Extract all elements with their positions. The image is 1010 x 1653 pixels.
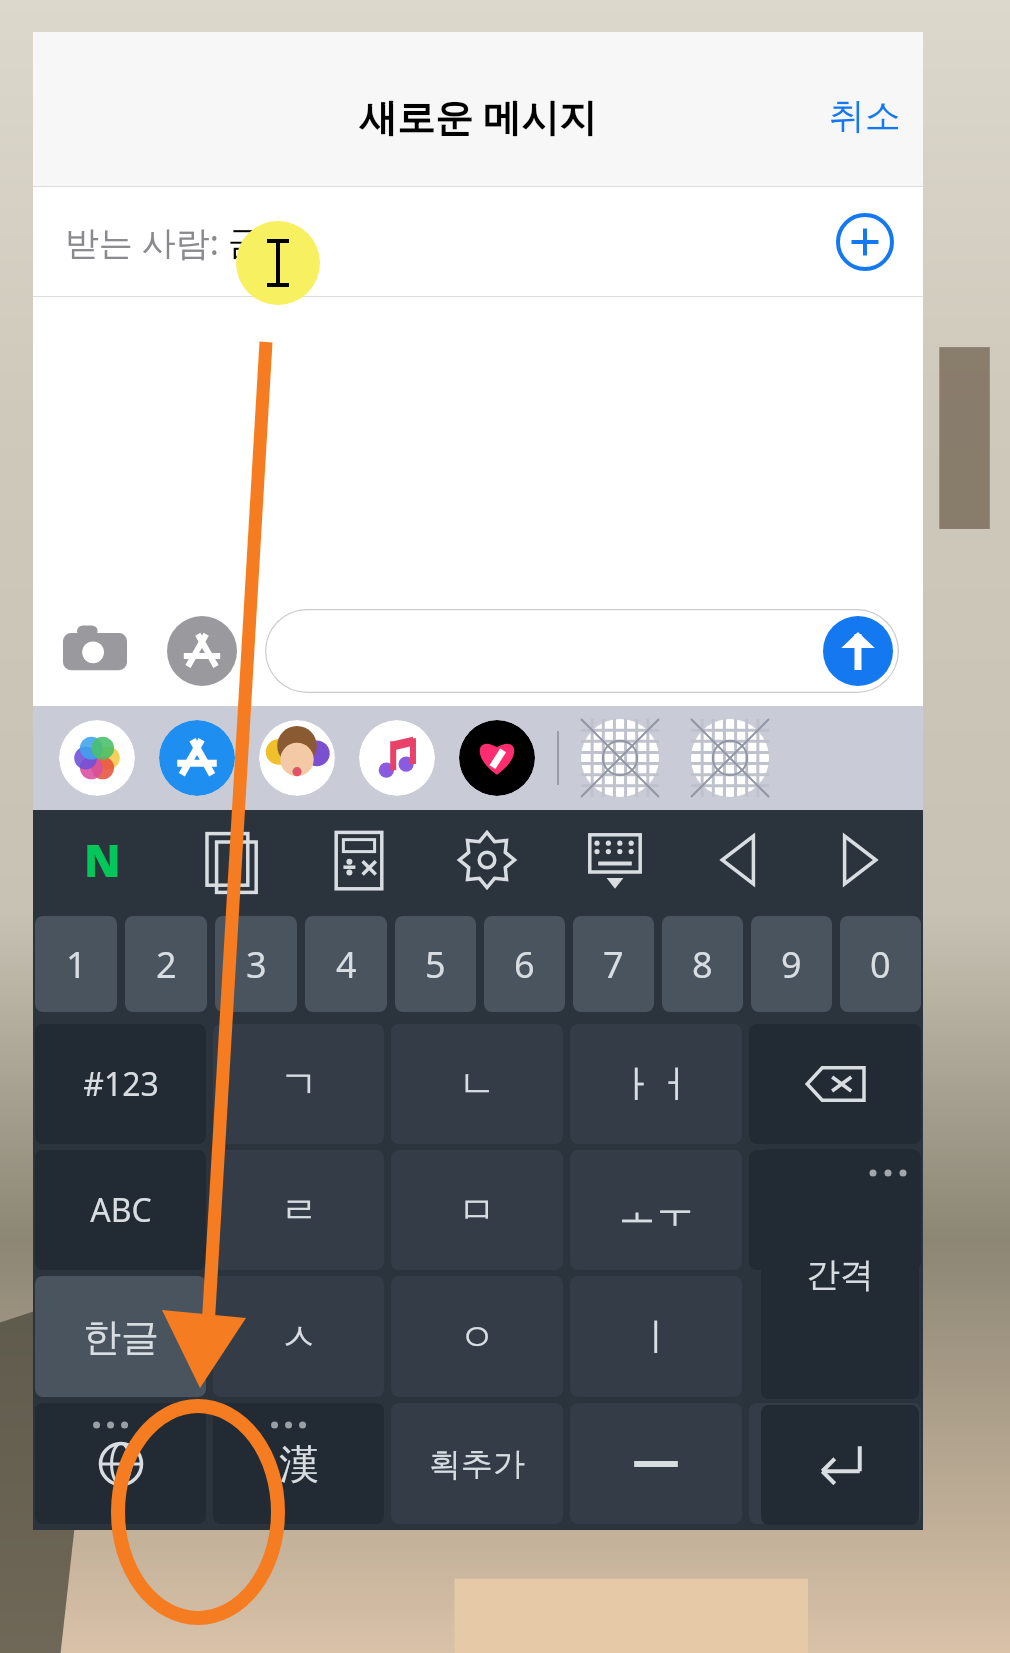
button[interactable]: Naver: [71, 829, 133, 891]
button[interactable]: ㅣ: [570, 1276, 742, 1397]
button[interactable]: App: [159, 720, 235, 796]
button[interactable]: Hide keyboard: [585, 830, 645, 890]
staticText: 간격: [806, 1253, 874, 1296]
staticText: 4: [336, 940, 357, 989]
button[interactable]: Clipboard: [201, 830, 261, 890]
button[interactable]: ㄴ: [391, 1024, 563, 1144]
button[interactable]: App: [59, 720, 135, 796]
staticText: 漢: [279, 1439, 319, 1489]
button[interactable]: ㅅ: [213, 1276, 384, 1397]
button[interactable]: Send: [265, 609, 899, 693]
staticText: ㅅ: [280, 1313, 318, 1361]
button[interactable]: ㅏㅓ: [570, 1024, 742, 1144]
staticText: 취소: [829, 93, 901, 138]
button[interactable]: Send: [823, 616, 893, 686]
button[interactable]: App: [359, 720, 435, 796]
staticText: ㅣ: [637, 1313, 675, 1361]
button[interactable]: 획추가: [391, 1403, 563, 1524]
button[interactable]: 5: [395, 916, 476, 1012]
button[interactable]: 간격: [749, 1150, 921, 1270]
button[interactable]: #123: [35, 1024, 206, 1144]
button[interactable]: Stroke: [570, 1403, 742, 1524]
staticText: ㄱ: [280, 1060, 318, 1108]
staticText: ㅗㅜ: [618, 1186, 694, 1234]
staticText: 5: [425, 940, 446, 989]
button[interactable]: ABC: [35, 1150, 206, 1270]
staticText: 3: [246, 940, 267, 989]
button[interactable]: 3: [215, 916, 297, 1012]
button[interactable]: App: [459, 720, 535, 796]
staticText: 획추가: [429, 1444, 525, 1484]
button[interactable]: ㄱ: [213, 1024, 384, 1144]
staticText: 금: [228, 221, 262, 264]
button[interactable]: 8: [662, 916, 743, 1012]
button[interactable]: App: [259, 720, 335, 796]
staticText: 2: [156, 940, 177, 989]
staticText: ㅏㅓ: [618, 1060, 694, 1108]
button[interactable]: 4: [305, 916, 387, 1012]
button[interactable]: Camera: [57, 613, 133, 689]
button[interactable]: ㄹ: [213, 1150, 384, 1270]
staticText: ㅇ: [458, 1313, 496, 1361]
staticText: ㄹ: [280, 1186, 318, 1234]
button[interactable]: App Store: [167, 616, 237, 686]
button[interactable]: 취소: [807, 83, 923, 148]
button[interactable]: 9: [751, 916, 832, 1012]
staticText: 받는 사람:: [65, 219, 228, 265]
button[interactable]: 한글: [35, 1276, 206, 1397]
button[interactable]: 쌍자음: [749, 1403, 921, 1524]
staticText: 0: [870, 940, 891, 989]
button[interactable]: Enter: [761, 1405, 919, 1525]
button[interactable]: Change language: [35, 1403, 206, 1524]
button[interactable]: Next: [829, 830, 889, 890]
staticText: N: [84, 830, 121, 890]
button[interactable]: ㅇ: [391, 1276, 563, 1397]
staticText: 7: [603, 940, 624, 989]
button[interactable]: 漢: [213, 1403, 384, 1524]
staticText: 한글: [83, 1313, 159, 1361]
button[interactable]: Previous: [709, 830, 769, 890]
button[interactable]: 간격: [761, 1149, 919, 1399]
staticText: 새로운 메시지: [359, 90, 597, 142]
staticText: ㅁ: [458, 1186, 496, 1234]
button[interactable]: Backspace: [749, 1024, 921, 1144]
button[interactable]: ㅁ: [391, 1150, 563, 1270]
button[interactable]: Calculator: [329, 830, 389, 890]
staticText: 9: [781, 940, 802, 989]
staticText: ABC: [90, 1188, 152, 1232]
button[interactable]: 2: [125, 916, 207, 1012]
button[interactable]: Settings: [457, 830, 517, 890]
button[interactable]: 6: [484, 916, 565, 1012]
button[interactable]: ㅗㅜ: [570, 1150, 742, 1270]
button[interactable]: 1: [35, 916, 117, 1012]
button[interactable]: 0: [840, 916, 921, 1012]
button[interactable]: Sticker pack: [691, 719, 769, 797]
button[interactable]: Sticker pack: [581, 719, 659, 797]
staticText: ㄴ: [458, 1060, 496, 1108]
staticText: 6: [514, 940, 535, 989]
staticText: 1: [66, 940, 87, 989]
staticText: 8: [692, 940, 713, 989]
button[interactable]: Add contact: [835, 212, 895, 272]
staticText: #123: [83, 1062, 159, 1106]
button[interactable]: 7: [573, 916, 654, 1012]
staticText: 쌍자음: [787, 1444, 883, 1484]
